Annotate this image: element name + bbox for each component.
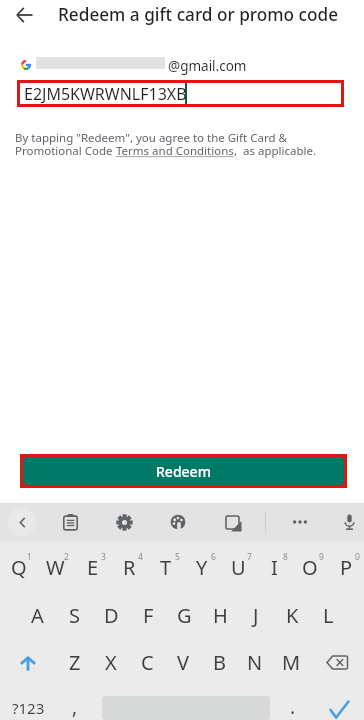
staticText: I xyxy=(271,554,278,581)
staticText: E2JM5KWRWNLF13XB xyxy=(24,83,187,105)
staticText: B xyxy=(213,649,226,676)
staticText: Redeem a gift card or promo code xyxy=(58,3,339,26)
button[interactable]: Settings xyxy=(110,508,138,536)
button[interactable]: Redeem xyxy=(23,457,344,485)
staticText: N xyxy=(247,649,263,676)
staticText: , xyxy=(72,694,78,720)
staticText: H xyxy=(213,602,228,629)
staticText: S xyxy=(69,602,80,629)
button[interactable]: U xyxy=(220,541,256,588)
button[interactable]: Terms and Conditions xyxy=(116,143,234,159)
staticText: Q xyxy=(11,554,27,581)
button[interactable]: Collapse toolbar xyxy=(8,508,36,536)
button[interactable]: Clipboard xyxy=(56,508,84,536)
staticText: 9 xyxy=(319,551,324,563)
button[interactable]: M xyxy=(273,635,309,682)
button[interactable]: K xyxy=(274,588,310,635)
staticText: F xyxy=(143,602,154,629)
staticText: 0 xyxy=(355,551,360,563)
button[interactable]: Y xyxy=(184,541,220,588)
staticText: U xyxy=(231,554,246,581)
button[interactable]: Themes xyxy=(164,508,192,536)
staticText: A xyxy=(31,602,44,629)
button[interactable]: X xyxy=(93,635,129,682)
button[interactable]: . xyxy=(274,682,312,720)
staticText: T xyxy=(160,554,172,581)
button[interactable]: F xyxy=(130,588,166,635)
staticText: D xyxy=(104,602,119,629)
button[interactable]: , xyxy=(56,682,94,720)
button[interactable] xyxy=(20,83,341,104)
staticText: K xyxy=(286,602,299,629)
staticText: X xyxy=(105,649,117,676)
staticText: M xyxy=(282,649,301,676)
staticText: 4 xyxy=(138,551,143,563)
button[interactable]: J xyxy=(238,588,274,635)
button[interactable]: T xyxy=(148,541,184,588)
staticText: , as applicable. xyxy=(234,143,317,159)
button[interactable]: N xyxy=(237,635,273,682)
staticText: 7 xyxy=(247,551,252,563)
button[interactable]: I xyxy=(256,541,292,588)
staticText: 5 xyxy=(175,551,180,563)
button[interactable]: S xyxy=(56,588,93,635)
button[interactable]: P xyxy=(328,541,364,588)
staticText: 3 xyxy=(101,551,106,563)
staticText: ?123 xyxy=(12,698,45,718)
button[interactable]: G xyxy=(166,588,202,635)
button[interactable]: Shift xyxy=(0,635,56,682)
staticText: C xyxy=(141,649,154,676)
staticText: W xyxy=(46,554,65,581)
staticText: G xyxy=(177,602,192,629)
button[interactable]: ?123 xyxy=(0,682,56,720)
button[interactable]: Done xyxy=(312,682,364,720)
button[interactable]: Back xyxy=(0,0,48,30)
staticText: @gmail.com xyxy=(168,57,247,75)
staticText: . xyxy=(290,694,296,720)
button[interactable]: R xyxy=(111,541,148,588)
button[interactable]: H xyxy=(202,588,238,635)
button[interactable]: O xyxy=(292,541,328,588)
button[interactable]: Voice input xyxy=(335,508,363,536)
button[interactable]: E xyxy=(74,541,111,588)
button[interactable]: More options xyxy=(286,508,314,536)
button[interactable]: Stickers xyxy=(218,508,246,536)
staticText: 6 xyxy=(211,551,216,563)
staticText: R xyxy=(123,554,136,581)
button[interactable]: Q xyxy=(0,541,37,588)
staticText: Promotional Code xyxy=(15,143,116,159)
staticText: V xyxy=(177,649,189,676)
staticText: L xyxy=(323,602,334,629)
button[interactable]: C xyxy=(129,635,165,682)
staticText: By tapping "Redeem", you agree to the Gi… xyxy=(15,130,287,146)
button[interactable]: D xyxy=(93,588,130,635)
button[interactable]: W xyxy=(37,541,74,588)
button[interactable]: L xyxy=(310,588,346,635)
staticText: 1 xyxy=(27,551,32,563)
button[interactable]: Z xyxy=(56,635,93,682)
button[interactable]: V xyxy=(165,635,201,682)
button[interactable]: A xyxy=(19,588,56,635)
staticText: 8 xyxy=(283,551,288,563)
staticText: P xyxy=(340,554,353,581)
staticText: O xyxy=(302,554,318,581)
button[interactable]: Backspace xyxy=(309,635,364,682)
staticText: Y xyxy=(196,554,208,581)
staticText: Z xyxy=(69,649,81,676)
staticText: E xyxy=(87,554,99,581)
staticText: Redeem xyxy=(156,462,211,481)
button[interactable]: B xyxy=(201,635,237,682)
staticText: 2 xyxy=(64,551,69,563)
staticText: J xyxy=(253,602,259,629)
